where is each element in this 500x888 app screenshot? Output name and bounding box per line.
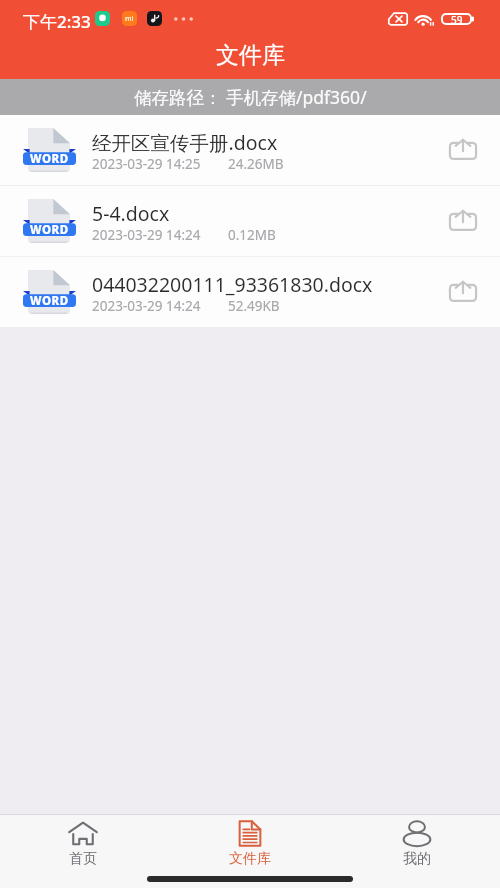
staticText: WORD [30, 222, 69, 238]
staticText: mi [125, 14, 134, 24]
staticText: WORD [30, 293, 69, 309]
staticText: 2023-03-29 14:25 [92, 155, 201, 173]
button[interactable]: WORD [0, 257, 500, 327]
staticText: 文件库 [229, 850, 271, 868]
button[interactable]: Share [436, 257, 490, 327]
staticText: 2023-03-29 14:24 [92, 297, 201, 315]
button[interactable]: WORD [0, 115, 500, 185]
staticText: 储存路径： 手机存储/pdf360/ [134, 85, 367, 109]
button[interactable]: Share [436, 186, 490, 256]
staticText: 下午2:33 [23, 10, 91, 33]
staticText: WORD [30, 151, 69, 167]
staticText: 24.26MB [228, 155, 284, 173]
staticText: 52.49KB [228, 297, 280, 315]
button[interactable]: Share [436, 115, 490, 185]
staticText: 我的 [403, 850, 431, 868]
staticText: 044032200111_93361830.docx [92, 271, 373, 298]
staticText: 经开区宣传手册.docx [92, 129, 278, 156]
button[interactable]: 首页 [0, 815, 166, 870]
button[interactable]: WORD [0, 186, 500, 256]
staticText: 0.12MB [228, 226, 276, 244]
button[interactable]: 我的 [333, 815, 500, 870]
staticText: 5-4.docx [92, 200, 170, 227]
staticText: 2023-03-29 14:24 [92, 226, 201, 244]
button[interactable]: 文件库 [166, 815, 333, 870]
staticText: 文件库 [216, 41, 285, 70]
staticText: 首页 [69, 850, 97, 868]
staticText: 59 [451, 13, 463, 27]
